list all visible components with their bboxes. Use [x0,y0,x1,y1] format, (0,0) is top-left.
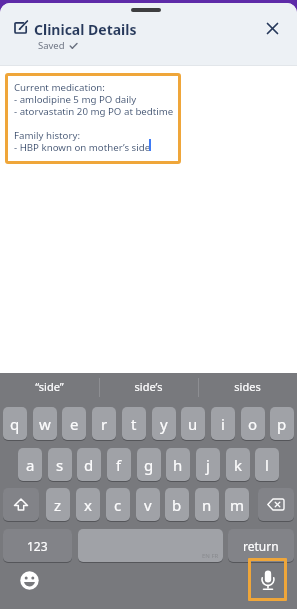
staticText: j [206,455,210,475]
staticText: x [84,495,92,515]
staticText: w [39,414,51,434]
staticText: u [188,414,198,434]
button[interactable]: b [165,488,189,521]
staticText: f [116,455,122,475]
button[interactable]: k [226,448,250,481]
staticText: o [248,414,258,434]
button[interactable]: v [136,488,160,521]
staticText: 123 [27,538,48,554]
staticText: v [144,495,152,515]
staticText: h [173,455,183,475]
button[interactable]: c [106,488,130,521]
staticText: e [70,414,79,434]
staticText: return [243,538,279,554]
button[interactable]: q [3,407,27,440]
button[interactable]: EN FR [78,529,223,562]
button[interactable]: i [211,407,235,440]
button[interactable] [258,488,294,521]
button[interactable] [3,488,39,521]
button[interactable]: x [76,488,100,521]
staticText: r [101,414,108,434]
button[interactable]: t [122,407,146,440]
staticText: c [114,495,122,515]
button[interactable]: side’s [99,379,198,394]
staticText: b [172,495,182,515]
staticText: EN FR [202,552,219,560]
staticText: g [144,455,154,475]
button[interactable] [16,567,43,594]
button[interactable]: j [196,448,220,481]
button[interactable]: w [33,407,57,440]
staticText: l [265,455,269,475]
staticText: n [202,495,212,515]
staticText: m [230,495,245,515]
button[interactable]: y [152,407,176,440]
staticText: Clinical Details [34,20,137,39]
button[interactable]: o [241,407,265,440]
button[interactable]: sides [198,379,297,394]
button[interactable]: Current medication: - amlodipine 5 mg PO… [5,73,181,164]
staticText: p [277,414,287,434]
button[interactable]: g [137,448,161,481]
button[interactable]: e [62,407,86,440]
staticText: a [26,455,35,475]
staticText: i [221,414,225,434]
button[interactable]: z [46,488,70,521]
button[interactable] [248,558,287,601]
button[interactable]: a [18,448,42,481]
button[interactable]: r [92,407,116,440]
button[interactable]: return [228,529,294,562]
button[interactable]: “side” [0,379,99,394]
button[interactable]: h [166,448,190,481]
button[interactable]: u [181,407,205,440]
button[interactable] [258,14,286,42]
button[interactable]: p [270,407,294,440]
button[interactable]: f [107,448,131,481]
staticText: d [84,455,94,475]
button[interactable]: s [48,448,72,481]
button[interactable]: l [255,448,279,481]
staticText: y [160,414,168,434]
staticText: s [56,455,64,475]
button[interactable]: d [77,448,101,481]
staticText: k [234,455,243,475]
staticText: t [131,414,137,434]
staticText: z [54,495,62,515]
button[interactable]: m [225,488,249,521]
button[interactable]: 123 [3,529,72,562]
staticText: Current medication: - amlodipine 5 mg PO… [14,81,174,154]
button[interactable]: n [195,488,219,521]
staticText: q [10,414,20,434]
staticText: Saved [38,39,65,52]
